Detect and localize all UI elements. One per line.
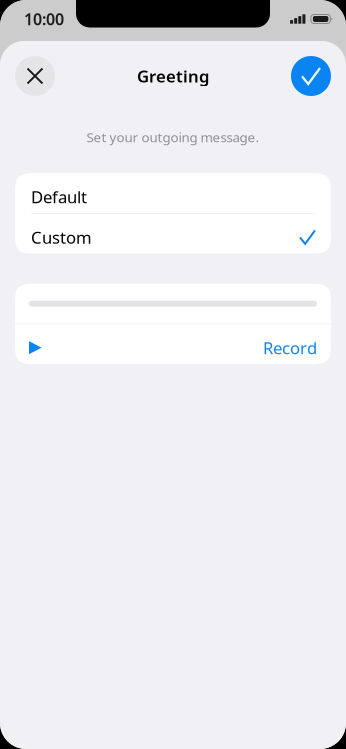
staticText: 10:00 [24, 8, 64, 30]
button[interactable]: Done [291, 56, 331, 96]
button[interactable]: Close [15, 56, 55, 96]
staticText: Default [31, 185, 87, 208]
button[interactable]: Default [15, 173, 331, 213]
button[interactable]: Custom [15, 214, 331, 254]
staticText: Greeting [137, 65, 209, 87]
staticText: Set your outgoing message. [86, 128, 259, 146]
staticText: Custom [31, 226, 92, 248]
button[interactable]: Record [15, 324, 331, 364]
staticText: Record [263, 336, 317, 359]
